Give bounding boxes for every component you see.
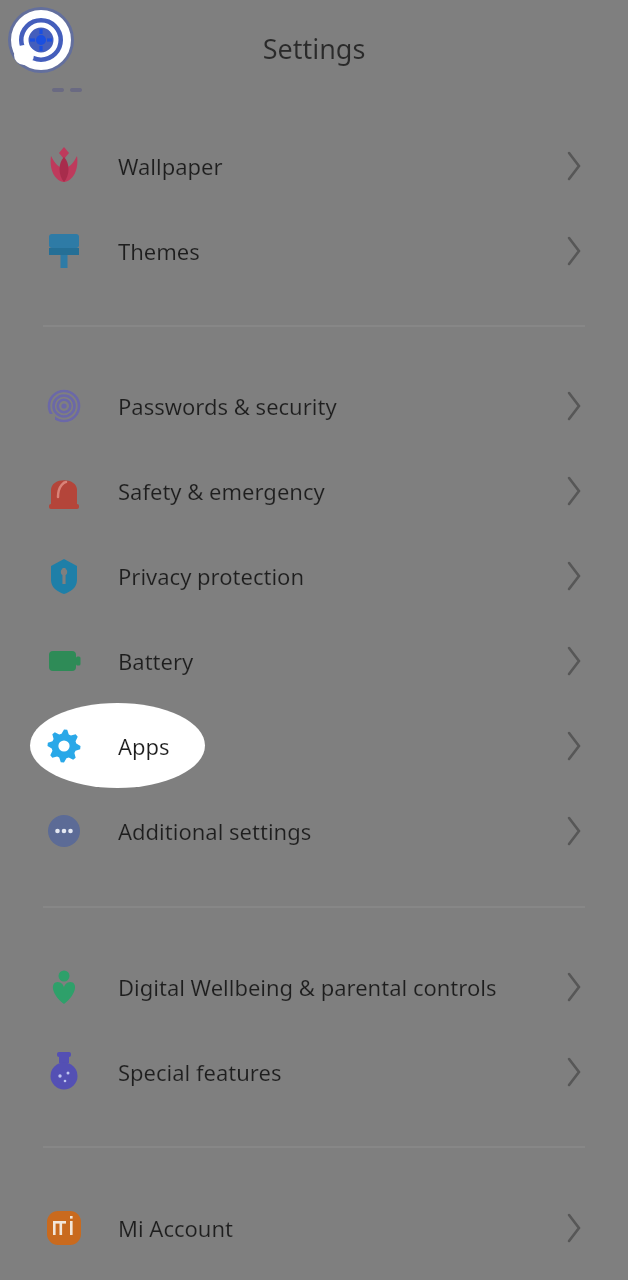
button[interactable] xyxy=(0,789,628,873)
button[interactable] xyxy=(0,364,628,448)
staticText: Passwords & security xyxy=(118,391,337,421)
button[interactable] xyxy=(0,1186,628,1270)
button[interactable] xyxy=(0,945,628,1029)
staticText: Mi Account xyxy=(118,1213,233,1243)
staticText: Settings xyxy=(0,30,628,1280)
staticText: Additional settings xyxy=(118,816,312,846)
staticText: Battery xyxy=(118,646,194,676)
staticText: Special features xyxy=(118,1057,282,1087)
staticText: Privacy protection xyxy=(118,561,305,591)
button[interactable] xyxy=(0,1030,628,1114)
staticText: Safety & emergency xyxy=(118,476,325,506)
staticText: Digital Wellbeing & parental controls xyxy=(118,972,497,1002)
staticText: Wallpaper xyxy=(118,151,223,181)
staticText: Apps xyxy=(118,731,170,761)
button[interactable] xyxy=(0,449,628,533)
button[interactable] xyxy=(0,704,628,788)
button[interactable] xyxy=(0,124,628,208)
button[interactable] xyxy=(0,534,628,618)
button[interactable]: Assistive ball xyxy=(8,7,74,73)
button[interactable] xyxy=(0,209,628,293)
staticText: Themes xyxy=(118,236,200,266)
button[interactable] xyxy=(0,619,628,703)
